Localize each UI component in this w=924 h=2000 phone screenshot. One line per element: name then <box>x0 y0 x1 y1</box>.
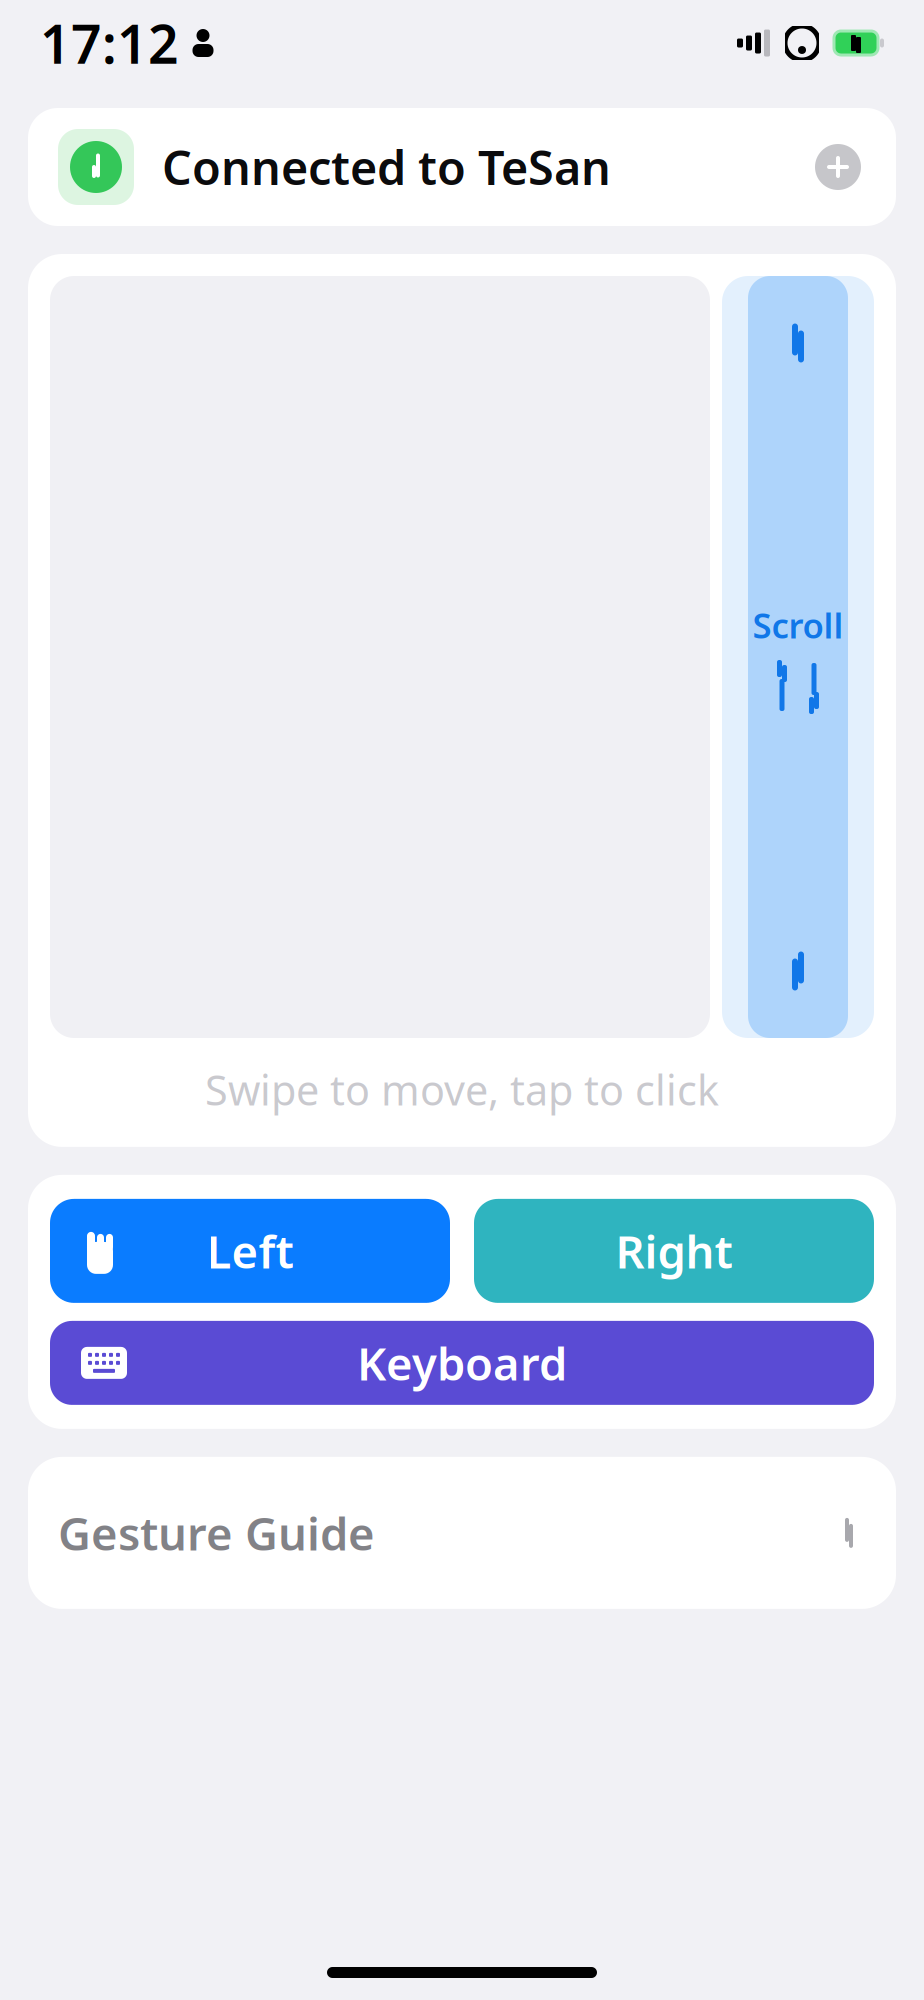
button[interactable]: Left <box>50 1199 450 1303</box>
staticText: Keyboard <box>357 1333 567 1393</box>
button[interactable]: Dismiss <box>810 139 866 195</box>
staticText: Right <box>615 1221 732 1281</box>
button[interactable]: Keyboard <box>50 1321 874 1405</box>
staticText: Gesture Guide <box>58 1503 375 1563</box>
button[interactable]: Right <box>474 1199 874 1303</box>
button[interactable]: Scroll strip <box>722 276 874 1038</box>
staticText: Swipe to move, tap to click <box>205 1062 719 1117</box>
button[interactable]: Gesture Guide <box>28 1457 896 1609</box>
staticText: Connected to TeSan <box>162 136 611 198</box>
staticText: 17:12 <box>40 8 179 78</box>
staticText: Left <box>206 1221 293 1281</box>
staticText: Scroll <box>752 602 843 648</box>
